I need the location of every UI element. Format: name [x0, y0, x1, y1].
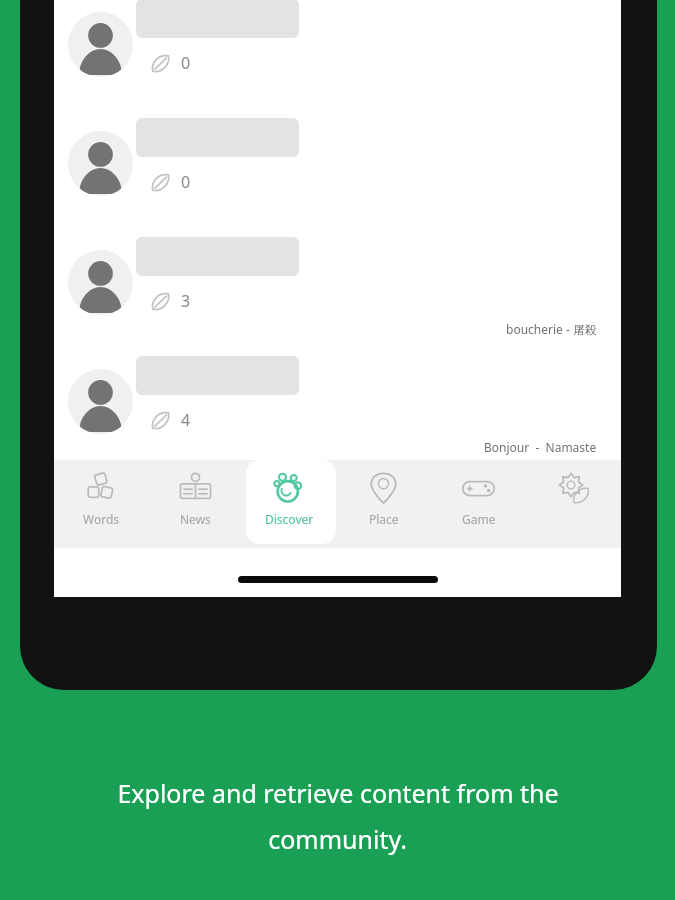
button[interactable]: Words	[54, 460, 148, 544]
staticText: community.	[268, 822, 407, 856]
staticText: Explore and retrieve content from the	[117, 776, 559, 810]
staticText: Place	[369, 511, 399, 527]
button[interactable]: 3	[54, 220, 621, 339]
staticText: boucherie - 屠殺	[506, 321, 597, 337]
staticText: 0	[181, 52, 191, 74]
staticText: Words	[83, 511, 120, 527]
staticText: 4	[181, 409, 191, 431]
button[interactable]: News	[148, 460, 242, 544]
button[interactable]: 0	[54, 0, 621, 101]
button[interactable]: Settings	[526, 460, 621, 544]
staticText: 0	[181, 171, 191, 193]
staticText: Discover	[265, 511, 314, 527]
button[interactable]: Place	[336, 460, 431, 544]
button[interactable]: Discover	[242, 460, 336, 544]
button[interactable]: Game	[431, 460, 526, 544]
button[interactable]: 0	[54, 101, 621, 220]
button[interactable]: 4	[54, 339, 621, 458]
staticText: News	[180, 511, 211, 527]
staticText: Game	[462, 511, 496, 527]
staticText: 3	[181, 290, 191, 312]
staticText: Bonjour - Namaste	[484, 439, 597, 455]
